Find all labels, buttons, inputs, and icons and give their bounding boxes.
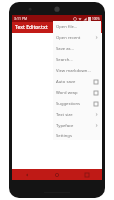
- staticText: Text Editor.txt: [15, 24, 48, 31]
- button[interactable]: Text size: [53, 109, 101, 120]
- staticText: 100%: [92, 17, 100, 21]
- button[interactable]: View markdown...: [53, 65, 101, 76]
- staticText: Settings: [56, 133, 98, 139]
- staticText: Typeface: [56, 123, 95, 129]
- button[interactable]: Open file...: [53, 21, 101, 32]
- staticText: Open file...: [56, 24, 98, 30]
- staticText: 3:11 PM: [14, 16, 28, 21]
- button[interactable]: Open recent: [53, 32, 101, 43]
- staticText: View markdown...: [56, 68, 98, 74]
- button[interactable]: Search...: [53, 54, 101, 65]
- button[interactable]: Auto save: [53, 76, 101, 87]
- button[interactable]: Text Editor.txt: [12, 22, 102, 33]
- button[interactable]: Recent apps: [72, 169, 102, 180]
- staticText: Save as...: [56, 46, 98, 52]
- staticText: Search...: [56, 57, 98, 63]
- staticText: Auto save: [56, 79, 94, 85]
- button[interactable]: Back: [12, 169, 42, 180]
- button[interactable]: Settings: [53, 131, 101, 140]
- button[interactable]: Typeface: [53, 120, 101, 131]
- staticText: Suggestions: [56, 101, 94, 107]
- staticText: Open recent: [56, 35, 95, 41]
- button[interactable]: Save as...: [53, 43, 101, 54]
- button[interactable]: Word wrap: [53, 87, 101, 98]
- button[interactable]: Home: [42, 169, 72, 180]
- staticText: Text size: [56, 112, 95, 118]
- button[interactable]: Suggestions: [53, 98, 101, 109]
- staticText: Word wrap: [56, 90, 94, 96]
